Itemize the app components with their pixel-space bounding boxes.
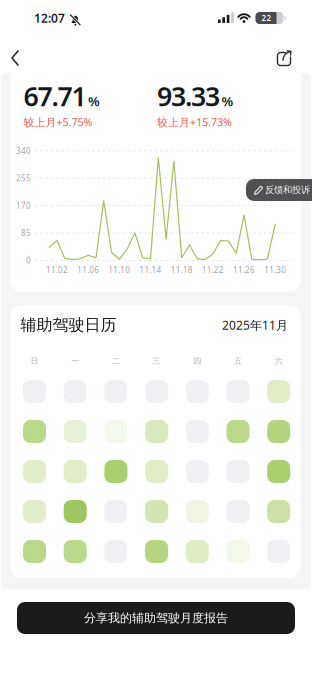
button[interactable]: 2025年11月20日 — [186, 500, 209, 523]
button[interactable]: 2025年11月1日 — [267, 380, 290, 403]
button[interactable]: 2025年11月28日 — [226, 540, 249, 563]
button[interactable]: 2025年11月27日 — [186, 540, 209, 563]
button[interactable]: 2025年11月10日 — [64, 460, 87, 483]
staticText: 四 — [193, 356, 201, 366]
button[interactable]: 2025年11月4日 — [104, 420, 127, 443]
button[interactable]: 2025年11月19日 — [145, 500, 168, 523]
staticText: % — [221, 92, 233, 110]
staticText: 85 — [21, 228, 31, 238]
staticText: % — [88, 92, 100, 110]
staticText: 六 — [275, 356, 283, 366]
staticText: 93.33 — [157, 78, 220, 114]
button[interactable]: 2025年11月24日 — [64, 540, 87, 563]
staticText: 11.02 — [46, 265, 68, 275]
staticText: 11.30 — [264, 265, 286, 275]
staticText: 255 — [16, 173, 31, 183]
button[interactable]: 2025年11月3日 — [64, 420, 87, 443]
staticText: 170 — [16, 200, 31, 211]
staticText: 五 — [234, 356, 242, 366]
button[interactable]: 2025年10月29日 — [145, 380, 168, 403]
staticText: 22 — [261, 13, 271, 23]
button[interactable]: 2025年11月21日 — [226, 500, 249, 523]
button[interactable]: 2025年11月5日 — [145, 420, 168, 443]
button[interactable]: 2025年11月13日 — [186, 460, 209, 483]
button[interactable]: 2025年11月11日 — [104, 460, 127, 483]
staticText: 一 — [71, 356, 79, 366]
button[interactable]: 2025年11月29日 — [267, 540, 290, 563]
staticText: 2025年11月 — [222, 317, 288, 333]
button[interactable]: 2025年11月9日 — [23, 460, 46, 483]
staticText: 11.06 — [77, 265, 99, 275]
staticText: 日 — [30, 356, 38, 366]
staticText: 0 — [26, 255, 31, 266]
button[interactable]: 2025年10月30日 — [186, 380, 209, 403]
button[interactable]: 反馈和投诉 — [246, 179, 312, 201]
button[interactable]: 2025年11月16日 — [23, 500, 46, 523]
button[interactable]: 2025年11月25日 — [104, 540, 127, 563]
button[interactable]: 2025年11月15日 — [267, 460, 290, 483]
staticText: 三 — [153, 356, 161, 366]
staticText: 二 — [112, 356, 120, 366]
staticText: 11.26 — [233, 265, 255, 275]
button[interactable]: 2025年10月27日 — [64, 380, 87, 403]
staticText: 11.10 — [108, 265, 130, 275]
button[interactable]: 2025年10月28日 — [104, 380, 127, 403]
staticText: 分享我的辅助驾驶月度报告 — [84, 611, 228, 625]
button[interactable]: 2025年11月26日 — [145, 540, 168, 563]
button[interactable]: 2025年11月22日 — [267, 500, 290, 523]
staticText: 12:07 — [34, 10, 65, 26]
button[interactable]: 2025年10月26日 — [23, 380, 46, 403]
button[interactable]: 2025年11月23日 — [23, 540, 46, 563]
button[interactable]: Back — [4, 47, 38, 69]
staticText: 辅助驾驶日历 — [20, 315, 116, 335]
button[interactable]: Share — [274, 46, 298, 70]
staticText: 11.22 — [202, 265, 224, 275]
staticText: 反馈和投诉 — [265, 184, 310, 196]
button[interactable]: 2025年11月8日 — [267, 420, 290, 443]
staticText: 340 — [16, 145, 31, 156]
staticText: 67.71 — [23, 78, 86, 114]
button[interactable]: 2025年11月7日 — [226, 420, 249, 443]
staticText: 较上月+15.73% — [157, 115, 232, 129]
button[interactable]: 2025年11月6日 — [186, 420, 209, 443]
staticText: 11.14 — [139, 265, 161, 275]
button[interactable]: 2025年11月12日 — [145, 460, 168, 483]
button[interactable]: 2025年11月17日 — [64, 500, 87, 523]
staticText: 较上月+5.75% — [23, 115, 92, 129]
button[interactable]: 分享我的辅助驾驶月度报告 — [17, 602, 295, 634]
button[interactable]: 2025年11月14日 — [226, 460, 249, 483]
button[interactable]: 2025年11月2日 — [23, 420, 46, 443]
button[interactable]: 2025年11月18日 — [104, 500, 127, 523]
button[interactable]: 2025年10月31日 — [226, 380, 249, 403]
staticText: 11.18 — [171, 265, 193, 275]
